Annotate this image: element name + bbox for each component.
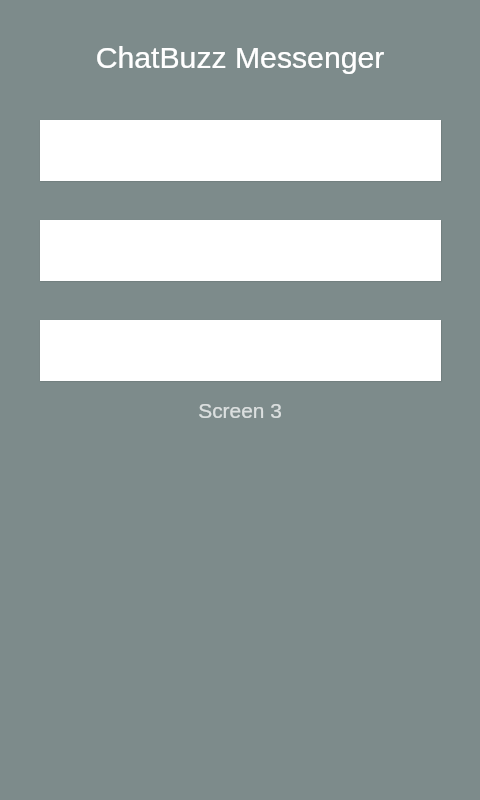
staticText: ChatBuzz Messenger <box>0 41 480 75</box>
staticText: Screen 3 <box>0 399 480 422</box>
